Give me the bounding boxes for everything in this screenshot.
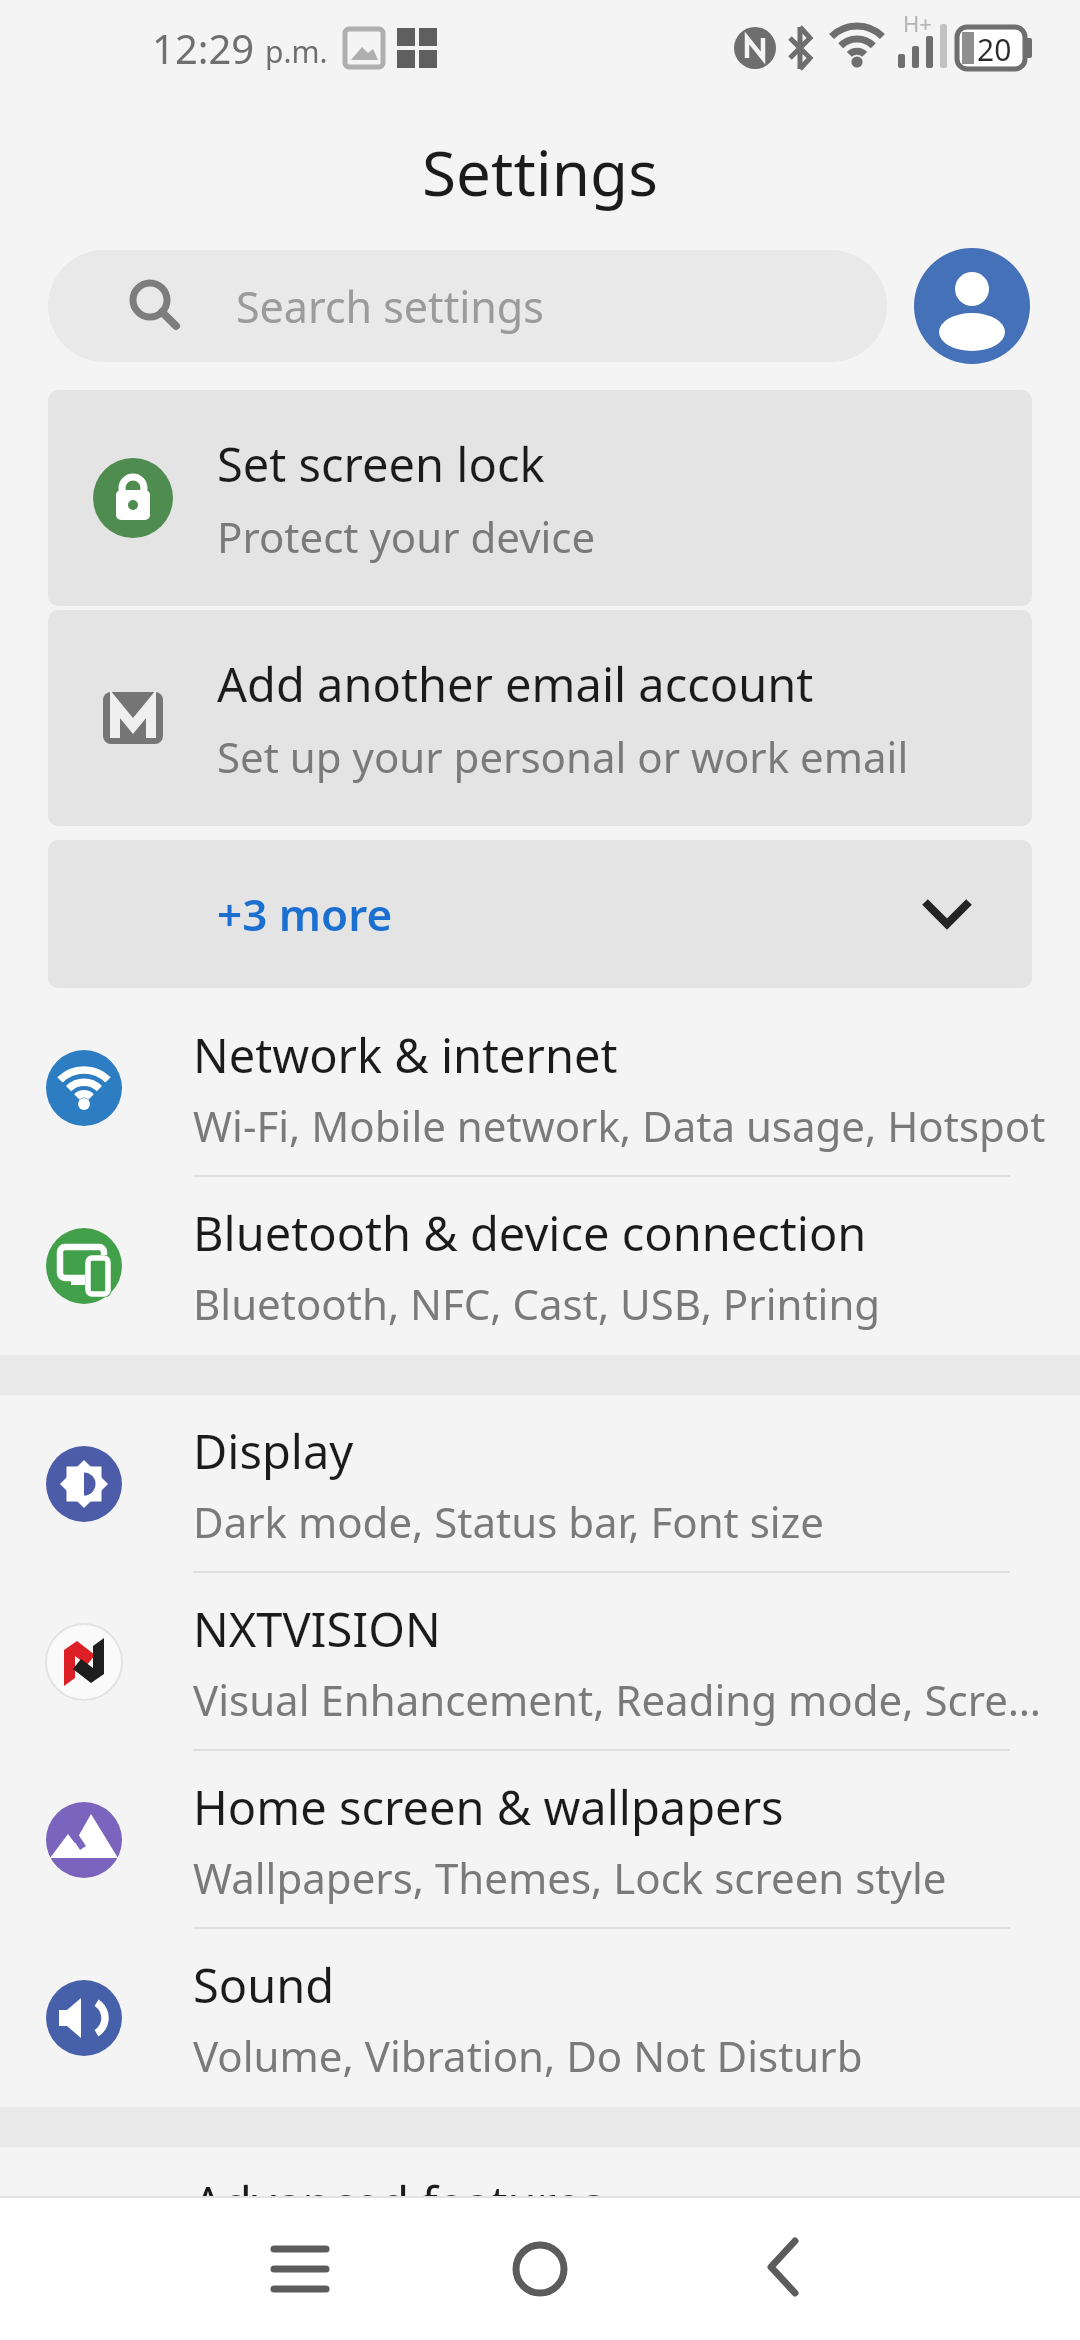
button[interactable]: Home screen & wallpapers: [0, 1751, 1080, 1929]
staticText: Visual Enhancement, Reading mode, Scre…: [193, 1671, 1042, 1728]
staticText: H+: [903, 8, 932, 38]
button[interactable]: Set screen lock: [48, 390, 1032, 606]
button[interactable]: Display: [0, 1395, 1080, 1573]
button[interactable]: [210, 2198, 390, 2340]
staticText: Volume, Vibration, Do Not Disturb: [193, 2027, 863, 2084]
staticText: Advanced features: [193, 2171, 604, 2235]
button[interactable]: [695, 2198, 875, 2340]
staticText: Protect your device: [217, 508, 596, 565]
button[interactable]: +3 more: [48, 840, 1032, 988]
button[interactable]: Network & internet: [0, 999, 1080, 1177]
staticText: p.m.: [265, 31, 328, 72]
staticText: Wallpapers, Themes, Lock screen style: [193, 1849, 947, 1906]
staticText: +3 more: [217, 884, 393, 944]
staticText: Smart features: [193, 2245, 486, 2302]
staticText: Home screen & wallpapers: [193, 1775, 784, 1839]
staticText: Sound: [193, 1953, 335, 2017]
button[interactable]: Add another email account: [48, 610, 1032, 826]
staticText: 12:29: [152, 21, 255, 75]
staticText: Network & internet: [193, 1023, 618, 1087]
staticText: Bluetooth, NFC, Cast, USB, Printing: [193, 1275, 881, 1332]
staticText: 20: [977, 29, 1012, 70]
staticText: Set screen lock: [217, 432, 545, 496]
staticText: Dark mode, Status bar, Font size: [193, 1493, 825, 1550]
staticText: Wi-Fi, Mobile network, Data usage, Hotsp…: [193, 1097, 1046, 1154]
staticText: Add another email account: [217, 652, 814, 716]
button[interactable]: [450, 2198, 630, 2340]
button[interactable]: Search settings: [48, 250, 887, 362]
staticText: NXTVISION: [193, 1597, 441, 1661]
button[interactable]: Sound: [0, 1929, 1080, 2107]
staticText: Bluetooth & device connection: [193, 1201, 867, 1265]
staticText: Display: [193, 1419, 354, 1483]
staticText: Set up your personal or work email: [217, 728, 909, 785]
button[interactable]: Bluetooth & device connection: [0, 1177, 1080, 1355]
button[interactable]: Advanced features: [0, 2147, 1080, 2325]
staticText: Search settings: [236, 277, 544, 336]
button[interactable]: [914, 248, 1030, 364]
button[interactable]: NXTVISION: [0, 1573, 1080, 1751]
staticText: Settings: [422, 130, 658, 214]
